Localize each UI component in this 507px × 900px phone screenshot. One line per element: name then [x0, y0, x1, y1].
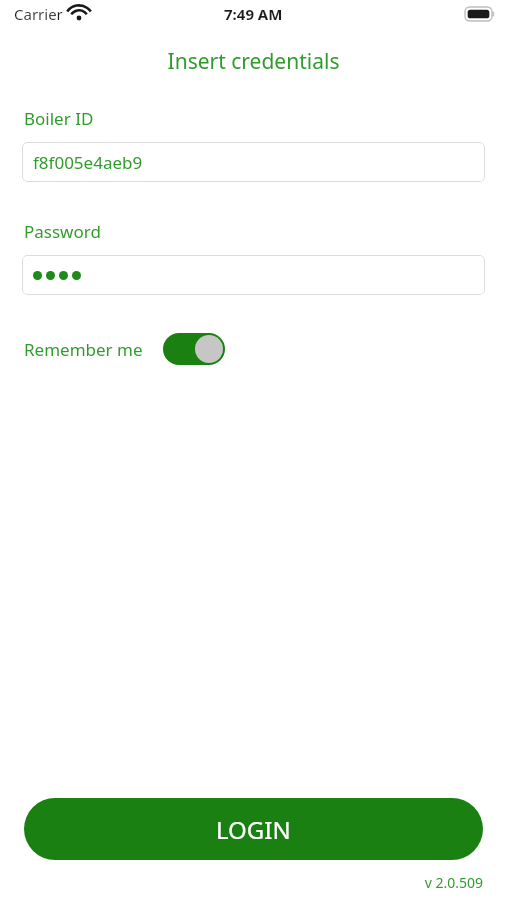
staticText: v 2.0.509: [0, 873, 483, 892]
button[interactable]: [22, 255, 485, 295]
staticText: Remember me: [24, 338, 143, 361]
staticText: Password: [24, 220, 101, 243]
staticText: Boiler ID: [24, 107, 94, 130]
other: Remember me toggle, on: [163, 333, 225, 365]
button[interactable]: Remember me: [22, 331, 225, 367]
button[interactable]: f8f005e4aeb9: [22, 142, 485, 182]
staticText: Carrier: [14, 4, 63, 24]
staticText: 7:49 AM: [224, 4, 283, 24]
button[interactable]: LOGIN: [24, 798, 483, 860]
staticText: LOGIN: [216, 813, 291, 846]
staticText: Insert credentials: [0, 47, 507, 76]
staticText: f8f005e4aeb9: [33, 151, 143, 174]
